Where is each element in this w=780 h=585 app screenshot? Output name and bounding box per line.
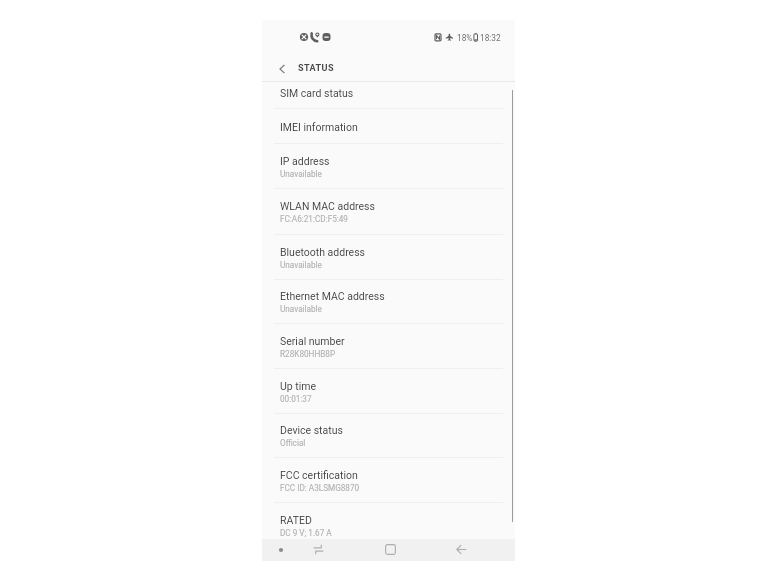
button[interactable]: Serial number [262, 324, 515, 369]
staticText: 18:32 [480, 33, 501, 43]
button[interactable]: IMEI information [262, 109, 515, 144]
button[interactable]: Ethernet MAC address [262, 280, 515, 324]
staticText: IMEI information [280, 121, 358, 133]
staticText: STATUS [298, 63, 334, 74]
staticText: Serial number [280, 335, 345, 347]
button[interactable]: Back [443, 539, 479, 560]
staticText: FC:A6:21:CD:F5:49 [280, 214, 348, 224]
staticText: FCC certification [280, 469, 358, 481]
staticText: FCC ID: A3LSMG8870 [280, 483, 360, 493]
staticText: RATED [280, 514, 312, 526]
button[interactable]: IP address [262, 144, 515, 189]
staticText: Unavailable [280, 304, 322, 314]
staticText: IP address [280, 155, 330, 167]
button[interactable]: Up time [262, 369, 515, 414]
staticText: Unavailable [280, 169, 322, 179]
staticText: SIM card status [280, 87, 354, 99]
staticText: WLAN MAC address [280, 200, 375, 212]
staticText: Official [280, 438, 306, 448]
staticText: Up time [280, 380, 317, 392]
staticText: Unavailable [280, 260, 322, 270]
staticText: Ethernet MAC address [280, 290, 385, 302]
staticText: Bluetooth address [280, 246, 366, 258]
button[interactable]: Recent apps [300, 539, 336, 560]
button[interactable]: SIM card status [262, 77, 515, 109]
button[interactable]: Home [372, 539, 408, 560]
button[interactable]: Device status [262, 414, 515, 458]
button[interactable]: Navigate up [273, 54, 291, 84]
button[interactable]: WLAN MAC address [262, 189, 515, 235]
button[interactable]: FCC certification [262, 458, 515, 503]
staticText: DC 9 V; 1.67 A [280, 528, 332, 538]
button[interactable]: RATED [262, 503, 515, 548]
staticText: 18% [457, 33, 473, 43]
staticText: 00:01:37 [280, 394, 312, 404]
staticText: Device status [280, 424, 343, 436]
staticText: R28K80HHB8P [280, 349, 336, 359]
button[interactable]: Bluetooth address [262, 235, 515, 280]
